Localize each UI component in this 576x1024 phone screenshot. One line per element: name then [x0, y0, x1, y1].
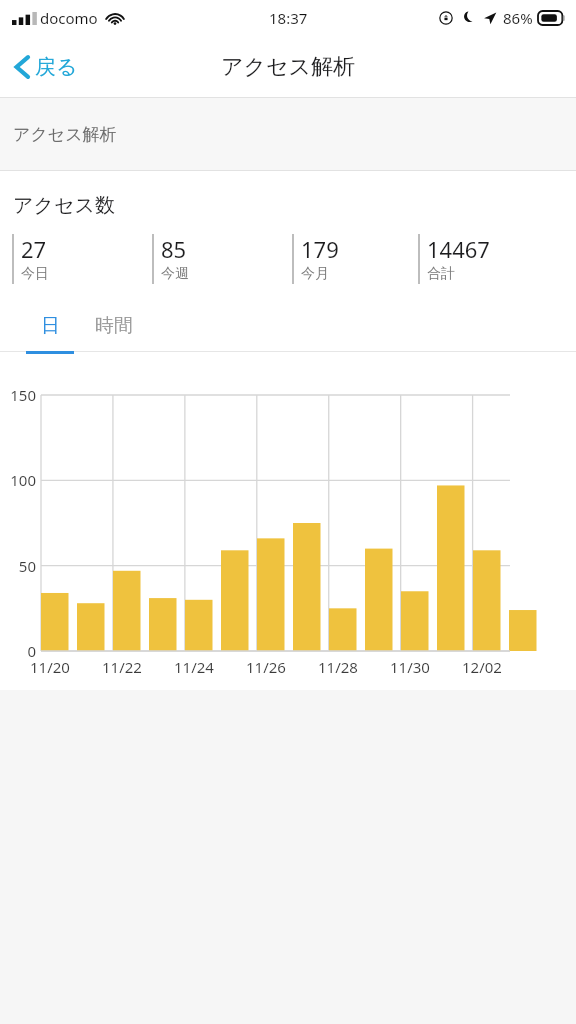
- staticText: 12/02: [462, 657, 502, 677]
- staticText: 179: [301, 234, 339, 264]
- staticText: 11/28: [318, 657, 358, 677]
- staticText: 11/22: [102, 657, 142, 677]
- staticText: 日: [41, 314, 60, 338]
- staticText: 150: [0, 385, 36, 405]
- staticText: 今週: [161, 265, 189, 283]
- staticText: 戻る: [35, 54, 78, 80]
- staticText: docomo: [40, 8, 98, 28]
- other: Back: [12, 53, 32, 81]
- staticText: アクセス解析: [13, 124, 117, 145]
- button[interactable]: 85: [152, 234, 292, 284]
- staticText: 50: [0, 556, 36, 576]
- staticText: 100: [0, 470, 36, 490]
- staticText: アクセス数: [13, 193, 115, 218]
- staticText: 11/30: [390, 657, 430, 677]
- staticText: 18:37: [269, 8, 308, 28]
- staticText: 0: [0, 641, 36, 661]
- button[interactable]: 27: [12, 234, 152, 284]
- staticText: 合計: [427, 265, 455, 283]
- staticText: 86%: [503, 8, 533, 28]
- staticText: 今月: [301, 265, 329, 283]
- staticText: 27: [21, 234, 47, 264]
- staticText: 11/26: [246, 657, 286, 677]
- staticText: 11/20: [30, 657, 70, 677]
- button[interactable]: 179: [292, 234, 418, 284]
- button[interactable]: 時間: [78, 312, 150, 340]
- staticText: 14467: [427, 234, 490, 264]
- button[interactable]: 日: [22, 312, 78, 340]
- button[interactable]: 14467: [418, 234, 576, 284]
- staticText: 時間: [95, 314, 133, 338]
- staticText: 85: [161, 234, 187, 264]
- staticText: 11/24: [174, 657, 214, 677]
- staticText: アクセス解析: [221, 53, 356, 81]
- staticText: 今日: [21, 265, 49, 283]
- button[interactable]: Back: [8, 47, 82, 87]
